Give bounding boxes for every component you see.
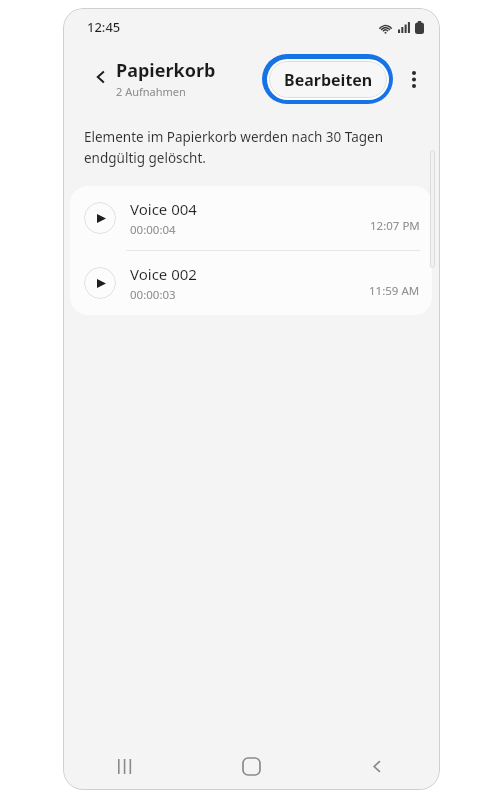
- button[interactable]: Wiedergabe: [84, 202, 116, 234]
- button[interactable]: Zurück: [83, 59, 119, 95]
- staticText: Papierkorb: [116, 58, 216, 83]
- staticText: Elemente im Papierkorb werden nach 30 Ta…: [84, 128, 414, 167]
- button[interactable]: Wiedergabe: [84, 267, 116, 299]
- staticText: Bearbeiten: [284, 69, 373, 91]
- staticText: 00:00:04: [130, 222, 176, 238]
- staticText: Voice 002: [130, 264, 197, 284]
- button[interactable]: Zurück: [314, 742, 440, 790]
- staticText: Voice 004: [130, 199, 197, 219]
- staticText: 00:00:03: [130, 287, 176, 303]
- staticText: 11:59 AM: [369, 283, 420, 299]
- button[interactable]: Wiedergabe: [70, 251, 432, 315]
- button[interactable]: Bearbeiten: [262, 54, 393, 104]
- staticText: 12:45: [87, 18, 121, 36]
- button[interactable]: Startbildschirm: [188, 742, 314, 790]
- button[interactable]: Weitere Optionen: [397, 62, 431, 96]
- button[interactable]: Wiedergabe: [70, 186, 432, 250]
- staticText: 2 Aufnahmen: [116, 84, 186, 99]
- staticText: 12:07 PM: [370, 218, 420, 234]
- button[interactable]: Letzte Apps: [63, 742, 188, 790]
